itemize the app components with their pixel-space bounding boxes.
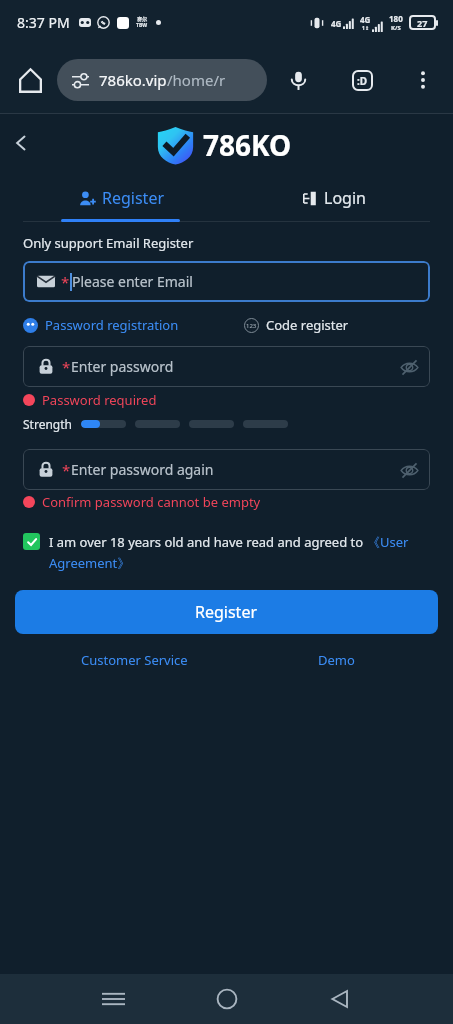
staticText: 27 (417, 17, 428, 29)
staticText: 《User (367, 533, 409, 551)
button[interactable]: Demo (314, 647, 359, 673)
staticText: Password required (42, 391, 157, 409)
staticText: Code register (266, 316, 349, 334)
button[interactable]: Customer Service (77, 647, 192, 673)
staticText: Register (195, 601, 258, 623)
staticText: * (62, 460, 71, 480)
staticText: TBW (136, 22, 148, 29)
staticText: Login (324, 187, 366, 209)
staticText: Demo (318, 651, 355, 669)
button[interactable]: * (23, 346, 430, 387)
button[interactable]: Show password (398, 459, 420, 481)
button[interactable]: * (23, 449, 430, 490)
button[interactable]: Home (8, 58, 52, 102)
staticText: Please enter Email (72, 272, 193, 291)
staticText: 1↕ (362, 25, 370, 32)
staticText: Agreement》 (49, 554, 131, 572)
button[interactable]: Show password (398, 356, 420, 378)
staticText: Register (102, 187, 165, 209)
button[interactable]: Voice search (276, 58, 320, 102)
staticText: Password registration (45, 316, 179, 334)
button[interactable]: 123 (244, 316, 349, 334)
button[interactable]: 786ko.vip (57, 59, 267, 101)
staticText: 赛尔 (137, 16, 147, 22)
button[interactable]: Home (200, 974, 254, 1024)
button[interactable]: Register (0, 174, 226, 222)
staticText: 4G (331, 18, 342, 29)
button[interactable]: * (23, 261, 430, 302)
staticText: Strength (23, 416, 72, 432)
staticText: * (61, 272, 70, 292)
staticText: I am over 18 years old and have read and… (49, 533, 367, 551)
staticText: K/S (391, 24, 401, 32)
staticText: Confirm password cannot be empty (42, 493, 261, 511)
staticText: * (62, 357, 71, 377)
button[interactable]: Agree to terms (23, 533, 40, 550)
staticText: Enter password (71, 357, 174, 376)
button[interactable]: Password registration (23, 316, 179, 334)
button[interactable]: More options (402, 59, 444, 101)
staticText: 786ko.vip (99, 70, 167, 90)
staticText: /home/r (167, 70, 226, 90)
staticText: 786KO (203, 126, 292, 164)
staticText: Customer Service (81, 651, 188, 669)
button[interactable]: Tabs (340, 58, 384, 102)
button[interactable]: Back (313, 974, 367, 1024)
staticText: 180 (389, 13, 403, 24)
button[interactable]: Back (6, 128, 36, 158)
button[interactable]: Recent apps (86, 974, 140, 1024)
staticText: 4G (360, 14, 371, 25)
staticText: Only support Email Register (23, 234, 194, 252)
button[interactable]: Login (226, 174, 453, 222)
staticText: :D (357, 74, 368, 88)
staticText: 123 (246, 322, 257, 330)
staticText: 8:37 PM (17, 13, 70, 32)
button[interactable]: Register (15, 590, 438, 634)
staticText: Enter password again (71, 460, 214, 479)
